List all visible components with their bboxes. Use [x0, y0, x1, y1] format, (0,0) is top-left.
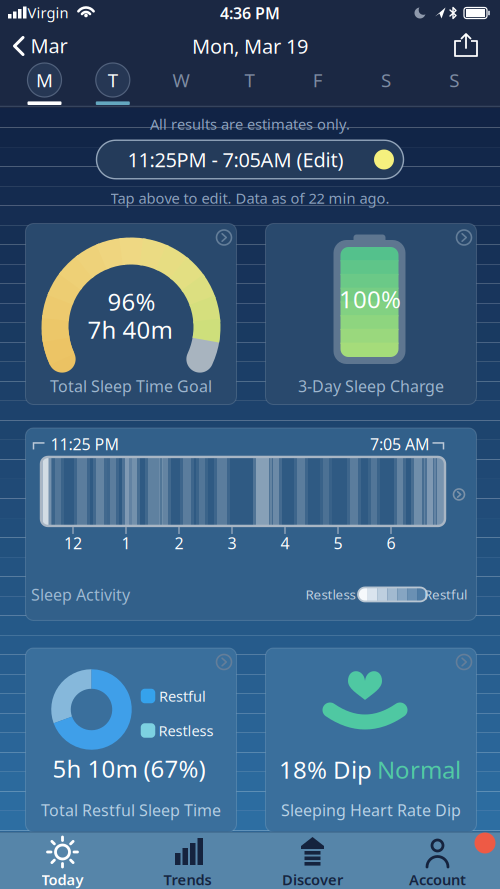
staticText: Total Restful Sleep Time	[41, 799, 221, 821]
button[interactable]: 96%	[25, 223, 236, 404]
button[interactable]: S	[430, 58, 478, 106]
staticText: S	[449, 68, 459, 92]
staticText: Sleep Activity	[31, 584, 130, 605]
button[interactable]: W	[157, 58, 205, 106]
staticText: 4	[280, 532, 289, 553]
button[interactable]: Today	[7, 832, 117, 889]
button[interactable]: S	[362, 58, 410, 106]
staticText: 7h 40m	[87, 314, 172, 345]
button[interactable]: Discover	[257, 832, 367, 889]
staticText: All results are estimates only.	[150, 114, 350, 134]
staticText: Restless	[158, 721, 213, 740]
staticText: Today	[41, 870, 83, 889]
staticText: Restless	[305, 586, 355, 603]
staticText: 5	[333, 532, 342, 553]
staticText: 3	[227, 532, 236, 553]
staticText: M	[36, 68, 53, 92]
staticText: 3-Day Sleep Charge	[298, 375, 444, 397]
staticText: F	[313, 68, 323, 92]
staticText: Mar	[30, 32, 67, 59]
staticText: Account	[409, 870, 466, 889]
button[interactable]: Restful	[25, 648, 236, 832]
staticText: W	[173, 68, 190, 92]
staticText: 4:36 PM	[220, 2, 280, 24]
staticText: 7:05 AM	[370, 433, 430, 454]
staticText: T	[244, 68, 254, 92]
button[interactable]: Share	[451, 32, 481, 60]
staticText: Normal	[377, 754, 461, 785]
button[interactable]: 11:25PM - 7:05AM (Edit)	[96, 140, 403, 179]
staticText: T	[108, 68, 118, 92]
staticText: Sleeping Heart Rate Dip	[281, 799, 461, 821]
button[interactable]: T	[225, 58, 273, 106]
staticText: Tap above to edit. Data as of 22 min ago…	[110, 188, 389, 208]
button[interactable]: F	[294, 58, 342, 106]
staticText: 96%	[107, 286, 155, 317]
button[interactable]: 11:25 PM	[25, 428, 476, 620]
staticText: Restful	[159, 686, 206, 706]
staticText: Total Sleep Time Goal	[50, 375, 212, 397]
staticText: 1	[121, 532, 130, 553]
staticText: 18% Dip	[279, 754, 372, 785]
staticText: 6	[386, 532, 395, 553]
button[interactable]: Back	[0, 26, 76, 66]
staticText: 100%	[339, 283, 401, 315]
button[interactable]: 100%	[265, 223, 476, 404]
button[interactable]: Account	[382, 832, 492, 889]
button[interactable]: M	[20, 58, 68, 106]
staticText: 2	[174, 532, 183, 553]
button[interactable]: Trends	[132, 832, 242, 889]
staticText: 5h 10m (67%)	[52, 753, 205, 784]
staticText: Mon, Mar 19	[192, 33, 308, 59]
staticText: 12	[64, 532, 82, 553]
staticText: Virgin	[27, 3, 68, 22]
staticText: S	[381, 68, 391, 92]
staticText: 11:25PM - 7:05AM (Edit)	[127, 146, 343, 173]
staticText: Trends	[163, 870, 211, 889]
button[interactable]: T	[89, 58, 137, 106]
staticText: Restful	[424, 586, 467, 603]
staticText: 11:25 PM	[50, 433, 119, 454]
button[interactable]: 18% Dip	[265, 648, 476, 832]
staticText: Discover	[282, 870, 343, 889]
